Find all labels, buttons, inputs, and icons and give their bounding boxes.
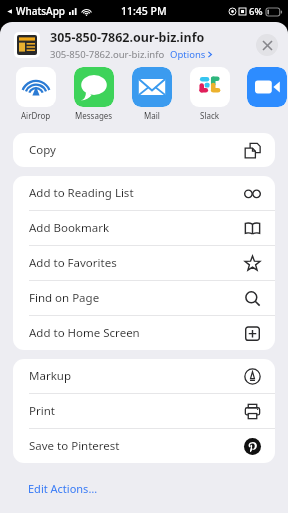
button[interactable] xyxy=(246,67,288,110)
staticText: Add to Favorites xyxy=(29,255,244,271)
button[interactable]: Copy xyxy=(13,133,275,167)
button[interactable]: Add to Favorites xyxy=(13,246,275,280)
staticText: Mail xyxy=(144,110,160,121)
button[interactable]: Add Bookmark xyxy=(13,211,275,245)
staticText: Copy xyxy=(29,142,244,158)
button[interactable]: Markup xyxy=(13,359,275,393)
button[interactable]: Find on Page xyxy=(13,281,275,315)
staticText: Print xyxy=(29,403,244,419)
staticText: 6% xyxy=(249,5,263,18)
staticText: Save to Pinterest xyxy=(29,438,244,454)
staticText: 305-850-7862.our-biz.info xyxy=(50,48,165,61)
staticText: Find on Page xyxy=(29,290,244,306)
button[interactable]: Save to Pinterest xyxy=(13,429,275,463)
button[interactable]: Add to Home Screen xyxy=(13,316,275,350)
button[interactable]: Edit Actions… xyxy=(0,473,288,503)
button[interactable]: Add to Reading List xyxy=(13,176,275,210)
staticText: Messages xyxy=(75,110,113,121)
staticText: WhatsApp xyxy=(16,4,66,18)
staticText: Add Bookmark xyxy=(29,220,244,236)
staticText: Options xyxy=(170,48,206,61)
button[interactable]: Mail xyxy=(130,67,174,121)
button[interactable]: AirDrop xyxy=(14,67,58,121)
staticText: AirDrop xyxy=(21,110,51,121)
staticText: 11:45 PM xyxy=(121,4,167,18)
staticText: Add to Reading List xyxy=(29,185,244,201)
button[interactable]: Options xyxy=(170,48,212,61)
button[interactable]: Slack xyxy=(188,67,232,121)
staticText: Add to Home Screen xyxy=(29,325,244,341)
button[interactable]: Messages xyxy=(72,67,116,121)
staticText: 305-850-7862.our-biz.info xyxy=(50,29,205,46)
button[interactable]: Print xyxy=(13,394,275,428)
button[interactable]: Close xyxy=(256,34,278,56)
staticText: Markup xyxy=(29,368,244,384)
staticText: Edit Actions… xyxy=(28,481,98,496)
staticText: Slack xyxy=(200,110,220,121)
